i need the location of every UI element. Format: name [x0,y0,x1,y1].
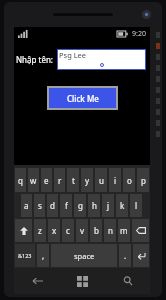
staticText: z [38,225,42,236]
button[interactable]: d [47,194,58,217]
button[interactable]: f [60,194,72,217]
staticText: j [107,200,110,211]
button[interactable]: m [118,219,130,242]
button[interactable]: , [37,244,49,267]
button[interactable]: Shift [15,219,32,242]
staticText: n [108,225,113,236]
button[interactable]: r [54,168,65,192]
button[interactable]: p [137,168,149,192]
staticText: a [24,200,29,211]
button[interactable]: q [15,168,26,192]
staticText: h [92,200,97,211]
staticText: &123 [18,252,32,259]
staticText: p [141,175,146,186]
staticText: Nhập tên: [16,54,53,65]
button[interactable]: k [116,194,128,217]
staticText: i [114,175,117,186]
button[interactable]: n [104,219,116,242]
staticText: Psg Lee [59,50,87,60]
button[interactable]: Back [14,268,60,294]
staticText: v [80,225,85,236]
staticText: space [74,251,95,261]
staticText: l [135,200,138,211]
button[interactable]: j [102,194,114,217]
staticText: u [99,175,104,186]
staticText: r [58,175,62,186]
button[interactable]: u [95,168,107,192]
button[interactable]: space [51,244,117,267]
button[interactable]: b [90,219,102,242]
staticText: c [66,225,70,236]
button[interactable]: Enter [133,244,149,267]
staticText: q [18,175,23,186]
button[interactable]: t [67,168,79,192]
staticText: g [78,200,83,211]
staticText: m [120,225,128,236]
staticText: y [85,175,90,186]
staticText: x [52,225,57,236]
staticText: k [120,200,125,211]
staticText: s [38,200,42,211]
staticText: o [127,175,132,186]
staticText: e [44,175,49,186]
staticText: 9:20 [132,29,146,39]
button[interactable]: a [21,194,32,217]
staticText: w [30,175,37,186]
button[interactable]: w [28,168,39,192]
button[interactable]: &123 [15,244,35,267]
button[interactable]: x [48,219,60,242]
button[interactable]: g [74,194,86,217]
staticText: d [50,200,55,211]
button[interactable]: s [34,194,45,217]
staticText: f [65,200,68,211]
button[interactable]: e [41,168,52,192]
button[interactable]: Backspace [132,219,149,242]
button[interactable]: . [119,244,131,267]
button[interactable]: c [62,219,74,242]
button[interactable]: Click Me [49,88,116,108]
button[interactable]: v [76,219,88,242]
button[interactable]: i [109,168,121,192]
button[interactable]: y [81,168,93,192]
staticText: t [72,175,75,186]
button[interactable]: Search [105,268,150,294]
staticText: . [124,250,127,261]
button[interactable]: h [88,194,100,217]
staticText: , [42,250,45,261]
button[interactable]: o [123,168,135,192]
staticText: Click Me [67,93,99,104]
button[interactable]: Psg Lee [57,49,146,70]
staticText: b [94,225,99,236]
button[interactable]: Start [60,268,105,294]
button[interactable]: z [34,219,46,242]
button[interactable]: l [130,194,142,217]
